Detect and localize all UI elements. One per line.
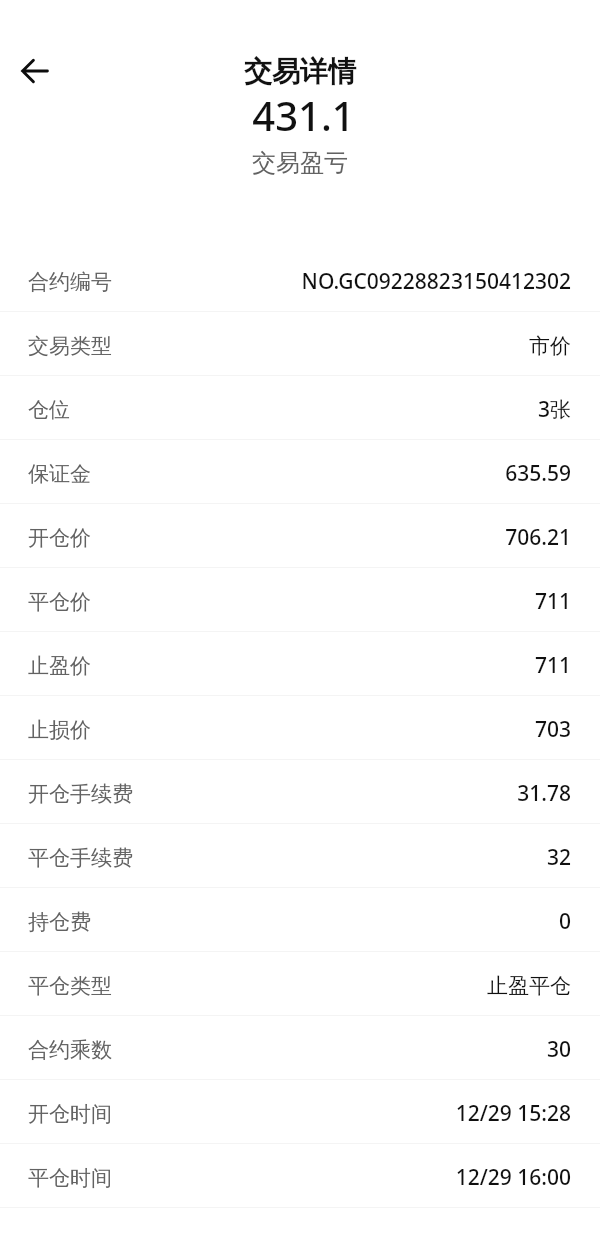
staticText: 交易详情 xyxy=(244,54,356,89)
staticText: 711 xyxy=(534,587,571,616)
staticText: 合约乘数 xyxy=(28,1037,112,1063)
staticText: 止盈价 xyxy=(28,653,91,679)
staticText: 合约编号 xyxy=(28,269,112,295)
staticText: 开仓手续费 xyxy=(28,781,133,807)
staticText: 30 xyxy=(546,1035,571,1064)
staticText: 12/29 15:28 xyxy=(455,1099,571,1128)
staticText: 平仓时间 xyxy=(28,1165,112,1191)
button[interactable]: 平仓类型 xyxy=(0,952,600,1015)
staticText: 开仓价 xyxy=(28,525,91,551)
staticText: 711 xyxy=(534,651,571,680)
staticText: 703 xyxy=(534,715,571,744)
button[interactable]: 开仓手续费 xyxy=(0,760,600,823)
button[interactable]: 平仓时间 xyxy=(0,1144,600,1207)
button[interactable]: 止损价 xyxy=(0,696,600,759)
staticText: 止损价 xyxy=(28,717,91,743)
button[interactable]: 开仓时间 xyxy=(0,1080,600,1143)
staticText: 开仓时间 xyxy=(28,1101,112,1127)
staticText: 635.59 xyxy=(505,459,571,488)
button[interactable]: 持仓费 xyxy=(0,888,600,951)
button[interactable]: 合约编号 xyxy=(0,248,600,311)
staticText: 0 xyxy=(558,907,571,936)
staticText: 3张 xyxy=(537,395,571,424)
button[interactable]: 平仓价 xyxy=(0,568,600,631)
staticText: 市价 xyxy=(529,333,571,359)
button[interactable]: Back xyxy=(11,47,59,95)
button[interactable]: 仓位 xyxy=(0,376,600,439)
staticText: 431.1 xyxy=(252,88,355,136)
staticText: 保证金 xyxy=(28,461,91,487)
staticText: 持仓费 xyxy=(28,909,91,935)
staticText: 31.78 xyxy=(517,779,571,808)
staticText: NO.GC09228823150412302 xyxy=(301,267,571,296)
staticText: 12/29 16:00 xyxy=(455,1163,571,1192)
button[interactable]: 开仓价 xyxy=(0,504,600,567)
button[interactable]: 合约乘数 xyxy=(0,1016,600,1079)
button[interactable]: 止盈价 xyxy=(0,632,600,695)
staticText: 平仓手续费 xyxy=(28,845,133,871)
staticText: 交易类型 xyxy=(28,333,112,359)
staticText: 平仓类型 xyxy=(28,973,112,999)
button[interactable]: 保证金 xyxy=(0,440,600,503)
button[interactable]: 平仓手续费 xyxy=(0,824,600,887)
staticText: 32 xyxy=(546,843,571,872)
staticText: 止盈平仓 xyxy=(487,973,571,999)
staticText: 706.21 xyxy=(505,523,571,552)
button[interactable]: 交易类型 xyxy=(0,312,600,375)
staticText: 仓位 xyxy=(28,397,70,423)
staticText: 平仓价 xyxy=(28,589,91,615)
staticText: 交易盈亏 xyxy=(252,148,348,178)
